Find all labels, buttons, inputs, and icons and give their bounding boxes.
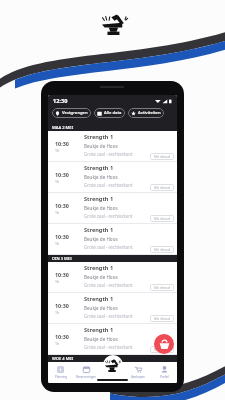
button[interactable]: 10:30: [48, 224, 177, 255]
staticText: 10:30: [55, 140, 69, 147]
button[interactable]: Planning: [48, 366, 73, 379]
staticText: Grote zaal - rechterkant: [84, 313, 133, 319]
button[interactable]: Alle data: [94, 108, 125, 118]
staticText: 1h: [55, 279, 60, 284]
staticText: Aankopen: [131, 375, 145, 379]
staticText: Activiteiten: [138, 110, 161, 116]
staticText: Grote zaal - rechterkant: [84, 344, 133, 350]
staticText: Grote zaal - rechterkant: [84, 151, 133, 157]
staticText: MAA 2 MEI: [52, 125, 74, 131]
staticText: Beukje de Hoos: [84, 336, 118, 342]
staticText: 1h: [55, 179, 60, 184]
button[interactable]: 10:30: [48, 324, 177, 355]
button[interactable]: Profiel: [151, 366, 177, 379]
staticText: Beukje de Hoos: [84, 305, 118, 311]
button[interactable]: Mis inhoud: [150, 215, 174, 222]
staticText: Mis inhoud: [154, 217, 171, 221]
staticText: Mis inhoud: [154, 317, 171, 321]
staticText: WOE 4 MEI: [52, 356, 74, 362]
staticText: Beukje de Hoos: [84, 205, 118, 211]
staticText: Strength 1: [84, 133, 114, 141]
button[interactable]: Mis inhoud: [150, 346, 174, 353]
staticText: Strength 1: [84, 164, 114, 172]
button[interactable]: Home: [103, 355, 123, 375]
button[interactable]: Mis inhoud: [150, 153, 174, 160]
staticText: 1h: [55, 341, 60, 346]
staticText: 1h: [55, 241, 60, 246]
staticText: Profiel: [160, 375, 169, 379]
staticText: Reserveringen: [76, 375, 96, 379]
staticText: 12:30: [53, 97, 68, 105]
button[interactable]: Mis inhoud: [150, 315, 174, 322]
staticText: Mis inhoud: [154, 186, 171, 190]
button[interactable]: Vestgrongen: [52, 108, 91, 118]
button[interactable]: 10:30: [48, 131, 177, 162]
staticText: Planning: [55, 375, 67, 379]
staticText: Mis inhoud: [154, 286, 171, 290]
button[interactable]: Mis inhoud: [150, 246, 174, 253]
staticText: Strength 1: [84, 326, 114, 334]
staticText: 10:30: [55, 271, 69, 278]
staticText: Beukje de Hoos: [84, 143, 118, 149]
button[interactable]: Mis inhoud: [150, 284, 174, 291]
button[interactable]: Mis inhoud: [150, 184, 174, 191]
button[interactable]: Winkelmandje: [154, 334, 174, 354]
staticText: 10:30: [55, 171, 69, 178]
staticText: Grote zaal - rechterkant: [84, 244, 133, 250]
staticText: Strength 1: [84, 195, 114, 203]
staticText: 1h: [55, 210, 60, 215]
button[interactable]: Aankopen: [125, 366, 151, 379]
button[interactable]: 10:30: [48, 262, 177, 293]
button[interactable]: Activiteiten: [128, 108, 164, 118]
staticText: Vestgrongen: [62, 110, 88, 116]
staticText: Strength 1: [84, 226, 114, 234]
staticText: Strength 1: [84, 264, 114, 272]
staticText: Mis inhoud: [154, 248, 171, 252]
staticText: Mis inhoud: [154, 155, 171, 159]
button[interactable]: 10:30: [48, 293, 177, 324]
staticText: 10:30: [55, 202, 69, 209]
staticText: Strength 1: [84, 295, 114, 303]
staticText: 10:30: [55, 302, 69, 309]
staticText: 10:30: [55, 233, 69, 240]
button[interactable]: 10:30: [48, 193, 177, 224]
staticText: Grote zaal - rechterkant: [84, 213, 133, 219]
staticText: 10:30: [55, 333, 69, 340]
staticText: 1h: [55, 310, 60, 315]
staticText: DIN 3 MEI: [52, 256, 72, 262]
staticText: Alle data: [104, 110, 122, 116]
button[interactable]: 10:30: [48, 162, 177, 193]
staticText: 1h: [55, 148, 60, 153]
staticText: Beukje de Hoos: [84, 174, 118, 180]
staticText: Mis inhoud: [154, 348, 171, 352]
staticText: Grote zaal - rechterkant: [84, 282, 133, 288]
staticText: Grote zaal - rechterkant: [84, 182, 133, 188]
staticText: Beukje de Hoos: [84, 236, 118, 242]
staticText: Beukje de Hoos: [84, 274, 118, 280]
button[interactable]: Reserveringen: [73, 366, 99, 379]
